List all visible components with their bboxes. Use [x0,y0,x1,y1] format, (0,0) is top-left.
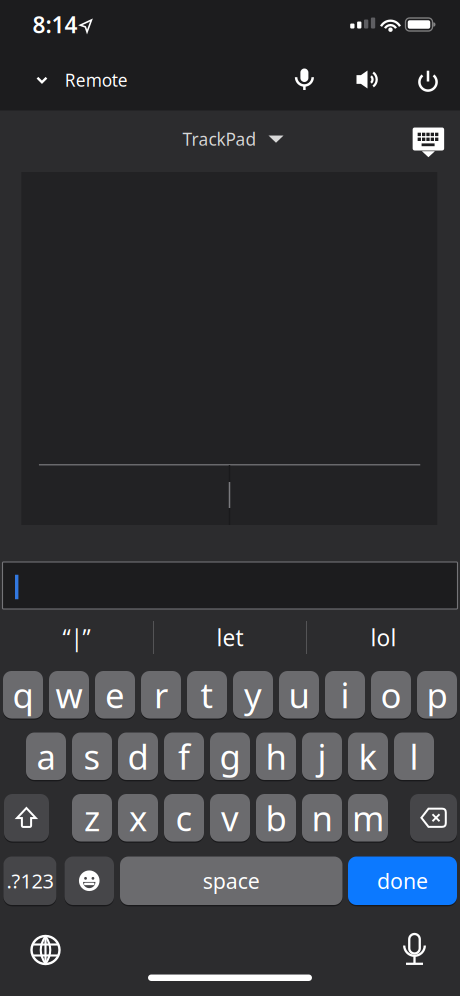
staticText: lol [370,622,396,652]
staticText: f [178,733,190,779]
button[interactable]: Emoji [64,856,114,905]
staticText: u [288,672,309,718]
staticText: l [409,733,418,779]
staticText: let [216,622,243,652]
staticText: a [36,733,55,779]
button[interactable]: x [118,794,158,841]
staticText: t [200,672,213,718]
staticText: p [426,672,447,718]
button[interactable]: Text input [2,562,457,609]
staticText: j [317,733,326,779]
button[interactable]: space [120,856,342,905]
staticText: n [311,795,332,841]
button[interactable]: lol [310,615,456,659]
button[interactable]: Shift [4,794,49,841]
staticText: z [84,795,100,841]
button[interactable]: Hide keyboard [412,127,445,157]
button[interactable]: q [3,671,43,718]
button[interactable]: l [394,732,434,780]
staticText: m [352,795,384,841]
button[interactable]: let [157,615,303,659]
button[interactable]: z [72,794,112,841]
staticText: “|” [62,622,90,652]
staticText: s [83,733,100,779]
button[interactable]: y [233,671,273,718]
staticText: Remote [65,68,128,91]
button[interactable]: m [348,794,388,841]
staticText: 8:14 [32,9,77,39]
staticText: k [358,733,377,779]
staticText: y [244,672,262,718]
button[interactable]: k [348,732,388,780]
button[interactable]: n [302,794,342,841]
button[interactable]: Trackpad [21,172,437,525]
button[interactable]: Next keyboard [30,935,60,965]
button[interactable]: o [371,671,411,718]
button[interactable]: j [302,732,342,780]
button[interactable]: h [256,732,296,780]
staticText: q [12,672,33,718]
staticText: TrackPad [182,127,256,150]
button[interactable]: Delete [410,794,457,841]
button[interactable]: c [164,794,204,841]
button[interactable]: Remote [36,59,128,101]
staticText: e [105,672,125,718]
staticText: w [55,672,82,718]
button[interactable]: b [256,794,296,841]
button[interactable]: TrackPad [182,124,283,154]
button[interactable]: Power [416,69,440,91]
button[interactable]: f [164,732,204,780]
button[interactable]: p [417,671,457,718]
staticText: r [154,672,168,718]
staticText: v [221,795,239,841]
staticText: h [265,733,286,779]
button[interactable]: t [187,671,227,718]
button[interactable]: done [348,856,457,905]
button[interactable]: g [210,732,250,780]
staticText: g [219,733,240,779]
button[interactable]: v [210,794,250,841]
staticText: done [377,867,428,895]
staticText: i [340,672,349,718]
staticText: x [129,795,147,841]
staticText: space [203,867,260,895]
button[interactable]: a [26,732,66,780]
button[interactable]: i [325,671,365,718]
button[interactable]: Dictation [403,933,425,965]
staticText: o [380,672,401,718]
button[interactable]: e [95,671,135,718]
staticText: c [175,795,192,841]
button[interactable]: d [118,732,158,780]
button[interactable]: u [279,671,319,718]
button[interactable]: Microphone [292,68,316,91]
button[interactable]: r [141,671,181,718]
button[interactable]: Volume [356,68,377,90]
staticText: b [265,795,286,841]
staticText: .?123 [6,867,53,894]
button[interactable]: s [72,732,112,780]
button[interactable]: “|” [3,615,149,659]
button[interactable]: w [49,671,89,718]
staticText: d [127,733,148,779]
button[interactable]: .?123 [3,856,56,905]
